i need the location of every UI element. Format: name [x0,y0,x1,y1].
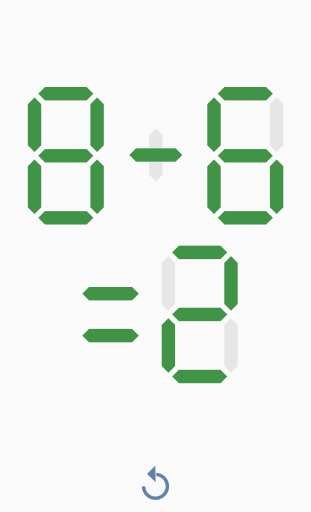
button[interactable]: Reset puzzle [129,452,181,510]
